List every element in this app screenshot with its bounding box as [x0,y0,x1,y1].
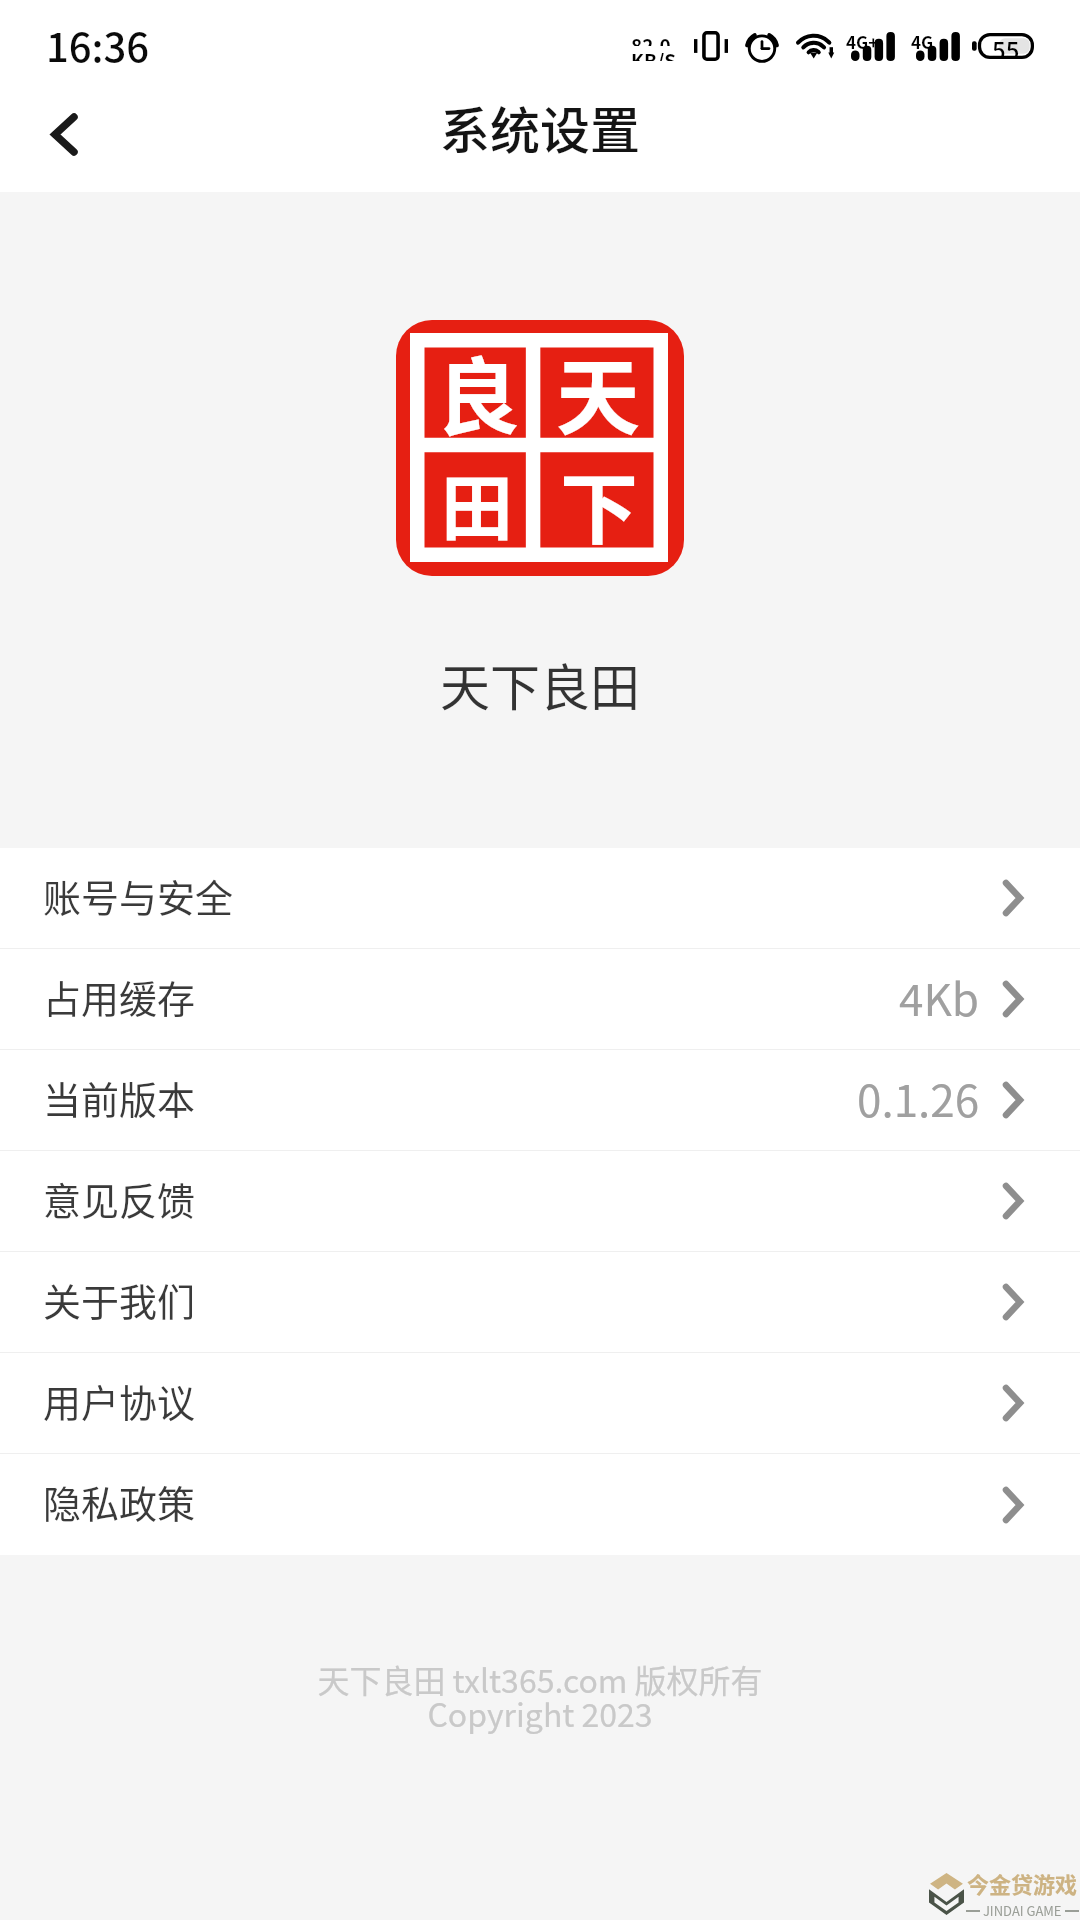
staticText: JINDAI GAME [980,1901,1065,1920]
staticText: 当前版本 [43,1070,196,1125]
button[interactable]: Back [20,90,108,178]
staticText: 4G [911,29,934,54]
staticText: 55 [992,32,1020,58]
staticText: 今金贷游戏 [967,1867,1078,1899]
staticText: 系统设置 [440,91,640,163]
staticText: KB/S [631,46,677,61]
staticText: 意见反馈 [43,1171,196,1226]
staticText: 占用缓存 [43,969,196,1024]
staticText: 16:36 [46,16,150,74]
button[interactable]: 关于我们 [0,1252,1080,1353]
staticText: 下 [560,448,639,561]
staticText: 0.1.26 [857,1066,980,1130]
staticText: 账号与安全 [43,868,234,923]
staticText: 关于我们 [43,1272,196,1327]
staticText: 82.0 [631,31,671,46]
button[interactable]: 当前版本 [0,1050,1080,1151]
button[interactable]: 隐私政策 [0,1454,1080,1555]
staticText: 4Kb [899,965,980,1029]
staticText: 天下良田 txlt365.com 版权所有 Copyright 2023 [0,1656,1080,1736]
staticText: 4G+ [846,29,879,54]
staticText: 隐私政策 [43,1474,196,1529]
button[interactable]: 意见反馈 [0,1151,1080,1252]
button[interactable]: 用户协议 [0,1353,1080,1454]
staticText: 天下良田 [440,648,640,720]
button[interactable]: 占用缓存 [0,949,1080,1050]
staticText: 天 [556,331,641,453]
button[interactable]: 账号与安全 [0,848,1080,949]
staticText: 良 [436,331,521,453]
staticText: 用户协议 [43,1373,196,1428]
staticText: 田 [441,450,514,554]
